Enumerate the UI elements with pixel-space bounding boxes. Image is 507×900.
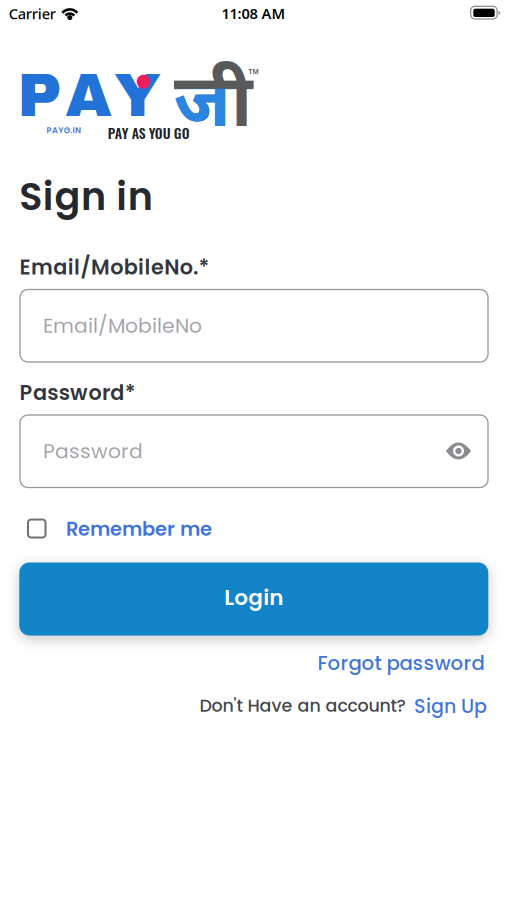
staticText: 11:08 AM (221, 4, 285, 23)
button[interactable]: Forgot password (317, 649, 484, 677)
staticText: Don't Have an account? (199, 693, 405, 718)
staticText: Sign Up (414, 693, 487, 720)
button[interactable]: Login (19, 562, 488, 635)
button[interactable]: Email/MobileNo (20, 289, 488, 362)
staticText: Sign in (19, 170, 153, 223)
staticText: ज (174, 61, 231, 155)
staticText: Login (224, 582, 283, 613)
staticText: Forgot password (317, 649, 484, 677)
staticText: जी (174, 61, 252, 155)
staticText: PAYG.IN (46, 125, 81, 136)
staticText: TM (248, 67, 258, 76)
staticText: Password (43, 437, 143, 465)
button[interactable]: Remember me (28, 515, 268, 543)
staticText: Remember me (66, 515, 212, 543)
staticText: Email/MobileNo.* (19, 253, 209, 282)
button[interactable]: Show password (446, 442, 471, 459)
staticText: PAY AS YOU GO (108, 123, 190, 143)
staticText: Password* (19, 378, 136, 407)
staticText: Carrier (9, 4, 56, 23)
staticText: Email/MobileNo (43, 312, 202, 340)
button[interactable]: Sign Up (414, 693, 494, 723)
staticText: PAY (17, 63, 161, 128)
button[interactable]: Password (20, 415, 488, 487)
